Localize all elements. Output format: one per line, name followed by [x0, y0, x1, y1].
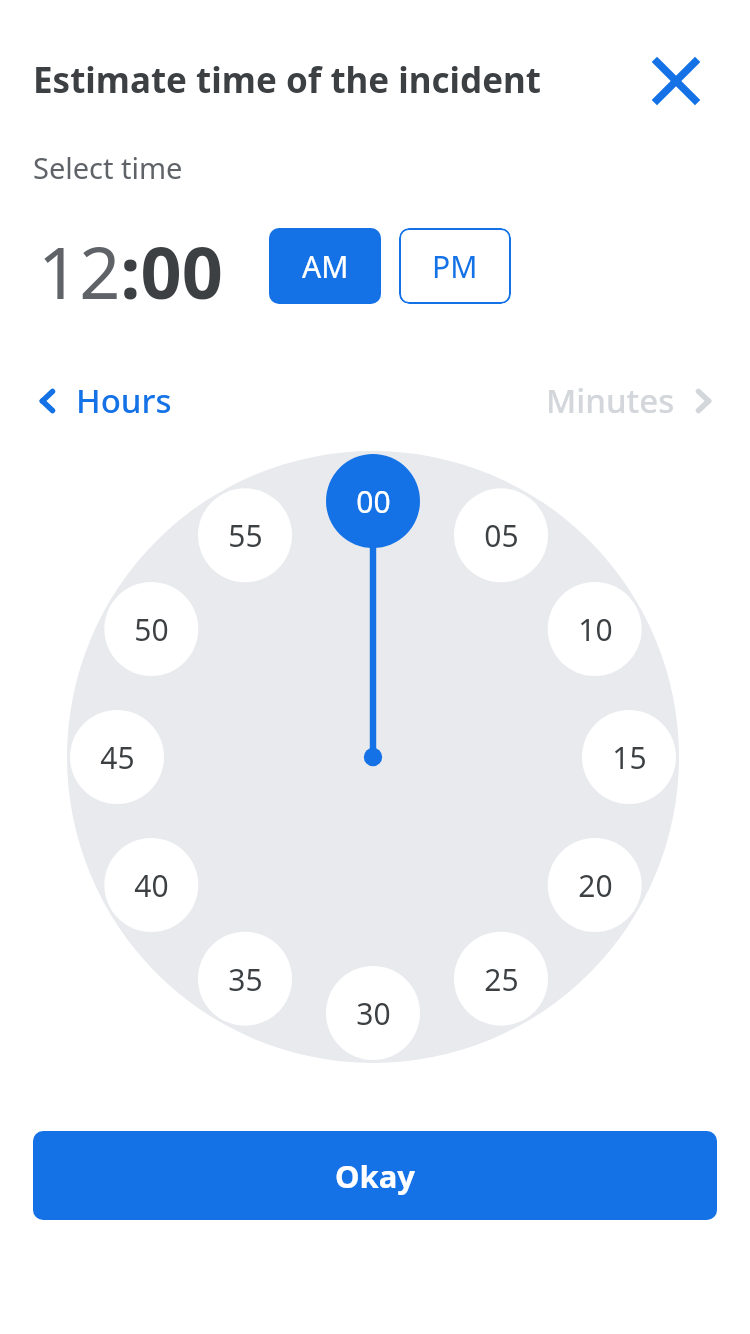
staticText: 25: [484, 959, 519, 1000]
button[interactable]: Close: [640, 45, 712, 117]
button[interactable]: AM: [269, 228, 381, 304]
staticText: 45: [100, 737, 135, 778]
staticText: Select time: [33, 148, 183, 187]
button[interactable]: 05: [454, 488, 548, 582]
button[interactable]: Minutes: [540, 372, 723, 429]
button[interactable]: 45: [70, 710, 164, 804]
staticText: 50: [134, 609, 169, 650]
button[interactable]: 25: [454, 932, 548, 1026]
button[interactable]: 12:00: [38, 222, 223, 320]
staticText: 30: [356, 993, 391, 1034]
button[interactable]: 35: [198, 932, 292, 1026]
staticText: 05: [484, 515, 519, 556]
staticText: PM: [432, 246, 478, 287]
button[interactable]: 50: [104, 582, 198, 676]
staticText: Estimate time of the incident: [33, 56, 542, 104]
button[interactable]: 15: [582, 710, 676, 804]
button[interactable]: Hours: [28, 372, 178, 429]
staticText: Okay: [335, 1155, 416, 1197]
button[interactable]: 20: [548, 838, 642, 932]
staticText: 00: [356, 481, 391, 522]
staticText: AM: [302, 246, 349, 287]
button[interactable]: 10: [548, 582, 642, 676]
button[interactable]: Okay: [33, 1131, 717, 1220]
staticText: Hours: [76, 378, 172, 423]
staticText: 55: [228, 515, 263, 556]
button[interactable]: 30: [326, 966, 420, 1060]
staticText: 10: [578, 609, 613, 650]
staticText: Minutes: [546, 378, 675, 423]
staticText: 20: [578, 865, 613, 906]
button[interactable]: 55: [198, 488, 292, 582]
button[interactable]: 00: [326, 454, 420, 548]
staticText: 40: [134, 865, 169, 906]
button[interactable]: 40: [104, 838, 198, 932]
staticText: 15: [612, 737, 647, 778]
staticText: 35: [228, 959, 263, 1000]
button[interactable]: PM: [399, 228, 511, 304]
